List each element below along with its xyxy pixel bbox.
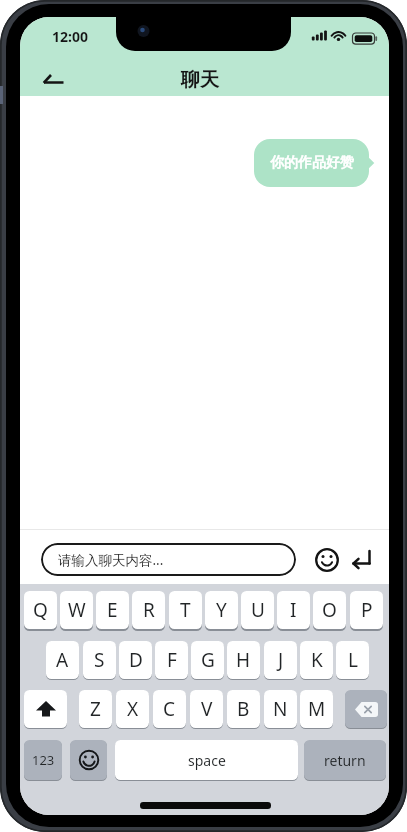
staticText: V <box>201 696 213 722</box>
button[interactable]: X <box>116 690 149 728</box>
staticText: 聊天 <box>181 68 219 92</box>
button[interactable]: E <box>96 591 129 629</box>
button[interactable]: N <box>264 690 297 728</box>
staticText: return <box>324 751 366 770</box>
button[interactable]: P <box>350 591 383 629</box>
button[interactable] <box>70 740 107 780</box>
staticText: space <box>188 751 226 770</box>
button[interactable]: 123 <box>24 740 62 780</box>
staticText: I <box>290 597 297 623</box>
button[interactable]: O <box>313 591 346 629</box>
staticText: M <box>308 696 326 722</box>
staticText: R <box>143 597 155 623</box>
staticText: 123 <box>32 751 55 769</box>
button[interactable]: T <box>169 591 202 629</box>
button[interactable]: Q <box>24 591 57 629</box>
staticText: G <box>201 647 215 673</box>
staticText: 12:00 <box>52 27 88 45</box>
staticText: S <box>94 647 105 673</box>
button[interactable]: A <box>46 641 79 679</box>
button[interactable]: K <box>300 641 333 679</box>
button[interactable]: L <box>336 641 369 679</box>
staticText: P <box>361 597 373 623</box>
staticText: F <box>167 647 177 673</box>
staticText: Q <box>33 597 48 623</box>
staticText: T <box>180 597 191 623</box>
staticText: Z <box>90 696 101 722</box>
staticText: E <box>107 597 118 623</box>
button[interactable]: C <box>153 690 186 728</box>
button[interactable]: Z <box>79 690 112 728</box>
button[interactable]: S <box>83 641 116 679</box>
button[interactable]: Y <box>205 591 238 629</box>
staticText: 请输入聊天内容... <box>58 551 164 569</box>
button[interactable] <box>24 690 67 728</box>
staticText: L <box>348 647 358 673</box>
staticText: N <box>273 696 288 722</box>
button[interactable]: G <box>191 641 224 679</box>
staticText: U <box>251 597 265 623</box>
button[interactable]: B <box>227 690 260 728</box>
button[interactable] <box>34 67 74 93</box>
staticText: A <box>56 647 69 673</box>
button[interactable]: W <box>60 591 93 629</box>
staticText: J <box>278 647 284 673</box>
button[interactable]: 你的作品好赞 <box>254 139 369 187</box>
button[interactable] <box>345 690 387 728</box>
staticText: O <box>322 597 337 623</box>
staticText: H <box>236 647 251 673</box>
button[interactable]: R <box>132 591 165 629</box>
staticText: B <box>237 696 250 722</box>
button[interactable] <box>348 547 374 573</box>
staticText: 你的作品好赞 <box>270 154 354 172</box>
staticText: K <box>311 647 323 673</box>
button[interactable] <box>314 547 340 573</box>
button[interactable]: 请输入聊天内容... <box>41 543 296 576</box>
staticText: Y <box>216 597 227 623</box>
button[interactable]: M <box>300 690 333 728</box>
button[interactable]: F <box>155 641 188 679</box>
button[interactable]: D <box>119 641 152 679</box>
button[interactable]: I <box>277 591 310 629</box>
button[interactable]: return <box>304 740 386 780</box>
staticText: X <box>127 696 139 722</box>
staticText: C <box>163 696 176 722</box>
button[interactable]: V <box>190 690 223 728</box>
button[interactable]: H <box>227 641 260 679</box>
button[interactable]: space <box>115 740 298 780</box>
button[interactable]: J <box>264 641 297 679</box>
staticText: D <box>129 647 143 673</box>
button[interactable]: U <box>241 591 274 629</box>
staticText: W <box>68 597 86 623</box>
